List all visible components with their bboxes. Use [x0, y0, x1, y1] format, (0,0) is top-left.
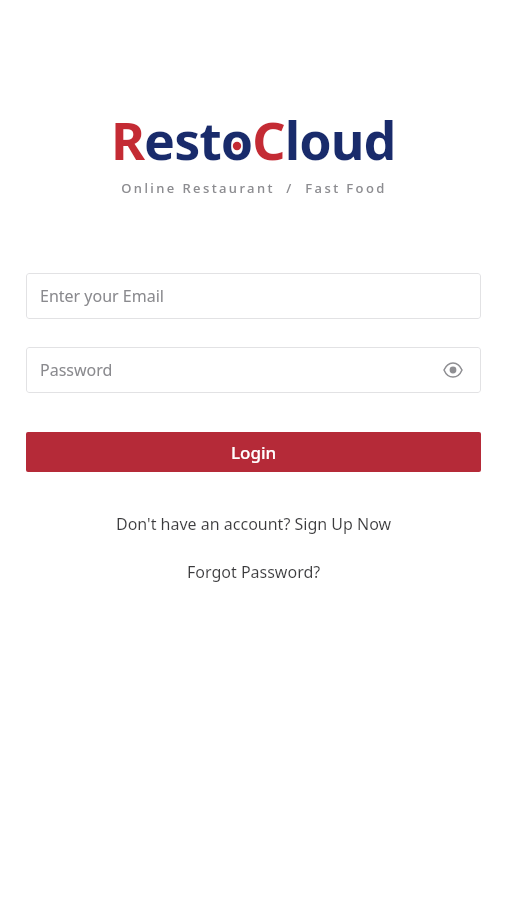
staticText: Forgot Password? — [187, 561, 321, 583]
button[interactable]: Login — [26, 432, 481, 472]
staticText: RestoCloud — [111, 104, 396, 175]
button[interactable]: Forgot Password? — [175, 557, 333, 587]
staticText: Login — [231, 441, 277, 464]
staticText: Password — [40, 359, 439, 381]
staticText: Online Restaurant / Fast Food — [121, 179, 387, 197]
staticText: Don't have an account? Sign Up Now — [116, 513, 392, 535]
button[interactable]: Password — [26, 347, 481, 393]
button[interactable]: Show password — [439, 356, 467, 384]
button[interactable]: Don't have an account? Sign Up Now — [104, 509, 404, 539]
button[interactable]: Enter your Email — [26, 273, 481, 319]
staticText: Enter your Email — [40, 285, 467, 307]
